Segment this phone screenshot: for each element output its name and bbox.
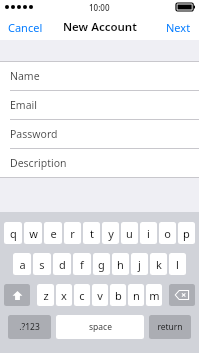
staticText: o [164,226,171,241]
button[interactable]: h [112,253,129,275]
staticText: k [156,257,162,272]
staticText: s [39,257,45,272]
button[interactable]: Cancel [0,14,51,40]
staticText: w [29,226,38,241]
button[interactable]: i [140,222,157,244]
button[interactable]: z [37,284,54,306]
staticText: Description [10,156,67,170]
button[interactable]: c [74,284,90,306]
staticText: Next [166,20,191,35]
staticText: x [61,288,67,303]
button[interactable]: a [13,253,31,275]
staticText: Name [10,69,40,83]
staticText: .?123 [19,321,40,333]
button[interactable]: return [149,315,191,339]
staticText: 10:00 [89,2,110,13]
button[interactable]: t [83,222,100,244]
button[interactable]: .?123 [8,315,51,339]
button[interactable]: e [44,222,62,244]
staticText: m [149,288,160,303]
staticText: r [70,226,75,241]
button[interactable]: v [92,284,108,306]
staticText: l [176,257,179,272]
staticText: return [157,321,183,333]
staticText: Email [10,98,37,112]
staticText: p [183,226,190,241]
button[interactable]: m [146,284,162,306]
button[interactable]: Shift [4,284,30,306]
button[interactable]: Delete [169,284,195,306]
staticText: i [147,226,150,241]
staticText: u [126,226,133,241]
button[interactable]: Description [0,149,199,177]
button[interactable]: Next [158,14,199,40]
staticText: Password [10,127,58,141]
staticText: d [59,257,66,272]
button[interactable]: l [169,253,186,275]
button[interactable]: y [102,222,119,244]
button[interactable]: w [24,222,42,244]
staticText: t [90,226,94,241]
staticText: q [10,226,17,241]
staticText: f [80,257,84,272]
button[interactable]: g [93,253,110,275]
button[interactable]: u [121,222,138,244]
button[interactable]: p [178,222,195,244]
button[interactable]: Name [0,62,199,90]
button[interactable]: j [131,253,148,275]
staticText: n [133,288,140,303]
staticText: h [117,257,124,272]
button[interactable]: d [53,253,71,275]
staticText: a [19,257,26,272]
staticText: c [79,288,85,303]
button[interactable]: x [56,284,72,306]
staticText: b [115,288,122,303]
button[interactable]: Password [0,120,199,148]
button[interactable]: o [159,222,176,244]
button[interactable]: n [128,284,144,306]
button[interactable]: space [56,315,144,339]
staticText: e [50,226,57,241]
staticText: Cancel [8,20,43,35]
button[interactable]: q [4,222,22,244]
button[interactable]: s [33,253,51,275]
staticText: j [138,257,141,272]
button[interactable]: b [110,284,126,306]
staticText: v [97,288,103,303]
button[interactable]: k [150,253,167,275]
button[interactable]: f [73,253,91,275]
staticText: z [43,288,49,303]
button[interactable]: r [64,222,81,244]
staticText: New Account [63,19,137,35]
button[interactable]: Email [0,91,199,119]
staticText: y [108,226,114,241]
staticText: space [89,321,112,333]
staticText: g [98,257,105,272]
